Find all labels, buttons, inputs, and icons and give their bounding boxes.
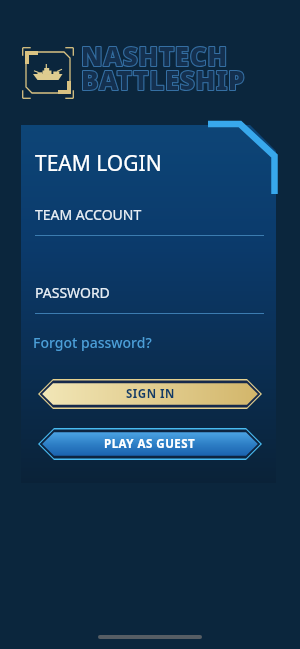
button[interactable]: Forgot password? <box>33 333 152 352</box>
staticText: BATTLESHIP <box>81 62 246 97</box>
staticText: NASHTECH <box>81 38 228 73</box>
staticText: SIGN IN <box>126 386 175 402</box>
button[interactable] <box>35 279 264 315</box>
staticText: TEAM LOGIN <box>35 149 162 178</box>
button[interactable]: SIGN IN <box>38 379 262 409</box>
staticText: PLAY AS GUEST <box>104 436 196 452</box>
staticText: TEAM ACCOUNT <box>35 205 142 224</box>
staticText: PASSWORD <box>35 283 110 302</box>
button[interactable]: PLAY AS GUEST <box>38 428 262 460</box>
staticText: NASHTECH <box>81 38 228 73</box>
staticText: BATTLESHIP <box>81 62 246 97</box>
staticText: Forgot password? <box>33 333 152 352</box>
button[interactable] <box>35 201 264 237</box>
